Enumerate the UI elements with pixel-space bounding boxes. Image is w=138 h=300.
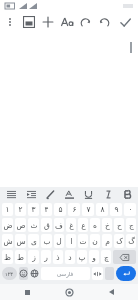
button[interactable]: Recent apps xyxy=(12,284,42,300)
button[interactable]: Emoji xyxy=(19,267,28,280)
staticText: ح xyxy=(117,221,122,230)
staticText: و xyxy=(92,253,96,262)
staticText: ه xyxy=(93,221,97,230)
button[interactable]: ج xyxy=(126,218,136,232)
staticText: گ xyxy=(128,237,135,246)
staticText: ۴ xyxy=(44,205,49,214)
button[interactable]: Underline xyxy=(80,187,96,202)
button[interactable]: Highlight xyxy=(42,187,58,202)
button[interactable]: Image xyxy=(19,12,38,32)
button[interactable]: Add xyxy=(38,12,57,32)
staticText: چ xyxy=(104,253,109,262)
button[interactable]: ت xyxy=(78,234,88,248)
button[interactable]: ذ xyxy=(53,250,63,264)
button[interactable]: ث xyxy=(28,218,39,232)
button[interactable]: م xyxy=(102,234,112,248)
button[interactable]: ۸ xyxy=(96,203,108,216)
button[interactable]: ب xyxy=(41,234,52,248)
staticText: ب xyxy=(43,237,51,246)
button[interactable]: Text format xyxy=(57,12,76,32)
button[interactable]: گ xyxy=(126,234,136,248)
button[interactable]: چ xyxy=(101,250,111,264)
button[interactable]: ف xyxy=(54,218,64,232)
staticText: ج xyxy=(129,221,134,230)
staticText: ض xyxy=(3,221,13,230)
button[interactable]: ۶ xyxy=(68,203,80,216)
button[interactable]: ۳ xyxy=(28,203,39,216)
staticText: ص xyxy=(16,221,26,230)
button[interactable]: ۱ xyxy=(2,203,13,216)
button[interactable]: Done xyxy=(115,12,135,32)
button[interactable]: Text colour xyxy=(61,187,77,202)
button[interactable]: More options xyxy=(0,12,19,32)
button[interactable]: ا xyxy=(66,234,76,248)
button[interactable]: Bullet list xyxy=(3,187,19,202)
staticText: ۰ xyxy=(128,205,133,214)
button[interactable]: ص xyxy=(15,218,26,232)
button[interactable]: ۹ xyxy=(110,203,122,216)
staticText: ش xyxy=(3,237,13,246)
button[interactable]: فارسی xyxy=(41,267,90,280)
staticText: ک xyxy=(116,237,123,246)
button[interactable]: غ xyxy=(66,218,76,232)
button[interactable]: ر xyxy=(41,250,51,264)
button[interactable]: ۵ xyxy=(54,203,66,216)
button[interactable]: ز xyxy=(28,250,39,264)
staticText: ل xyxy=(56,237,62,246)
staticText: ۹ xyxy=(114,205,119,214)
button[interactable]: ۴ xyxy=(41,203,52,216)
button[interactable]: Move cursor xyxy=(92,267,103,280)
button[interactable]: Change language xyxy=(30,267,39,280)
button[interactable]: Home xyxy=(54,284,84,300)
staticText: ۸ xyxy=(100,205,105,214)
button[interactable]: ک xyxy=(114,234,124,248)
staticText: ۷ xyxy=(86,205,91,214)
button[interactable]: ظ xyxy=(2,250,13,264)
staticText: ذ xyxy=(56,253,60,262)
button[interactable]: Redo xyxy=(76,12,95,32)
button[interactable]: ع xyxy=(78,218,88,232)
button[interactable]: ی xyxy=(28,234,39,248)
button[interactable]: ض xyxy=(2,218,13,232)
button[interactable]: ل xyxy=(54,234,64,248)
button[interactable]: ۱۲۳ xyxy=(2,267,17,280)
staticText: ط xyxy=(17,253,24,262)
button[interactable]: ط xyxy=(15,250,26,264)
button[interactable]: Indent xyxy=(23,187,39,202)
staticText: ا xyxy=(70,237,73,246)
button[interactable]: ۲ xyxy=(15,203,26,216)
staticText: ۵ xyxy=(58,205,63,214)
staticText: ز xyxy=(32,253,36,262)
button[interactable]: س xyxy=(15,234,26,248)
button[interactable]: خ xyxy=(102,218,112,232)
button[interactable]: Back xyxy=(96,284,126,300)
staticText: ۶ xyxy=(72,205,77,214)
staticText: خ xyxy=(105,221,110,230)
staticText: فارسی xyxy=(57,271,74,277)
staticText: م xyxy=(105,237,110,246)
button[interactable]: و xyxy=(89,250,99,264)
button[interactable]: ۰ xyxy=(124,203,136,216)
button[interactable]: پ xyxy=(77,250,87,264)
staticText: ث xyxy=(30,221,38,230)
button[interactable]: ۷ xyxy=(82,203,94,216)
staticText: غ xyxy=(69,221,74,230)
button[interactable]: Bold xyxy=(119,187,135,202)
button[interactable]: Enter xyxy=(116,266,136,281)
staticText: ف xyxy=(55,221,63,230)
button[interactable]: د xyxy=(65,250,75,264)
button[interactable]: Undo xyxy=(95,12,114,32)
staticText: پ xyxy=(78,253,86,262)
button[interactable]: ن xyxy=(90,234,100,248)
button[interactable]: ق xyxy=(41,218,52,232)
button[interactable]: Italic xyxy=(100,187,116,202)
button[interactable]: ح xyxy=(114,218,124,232)
staticText: ۱ xyxy=(5,205,10,214)
button[interactable]: ه xyxy=(90,218,100,232)
button[interactable]: Backspace xyxy=(113,250,136,264)
staticText: ن xyxy=(92,237,98,246)
button[interactable]: ش xyxy=(2,234,13,248)
staticText: ی xyxy=(31,237,37,246)
staticText: ۲ xyxy=(18,205,23,214)
